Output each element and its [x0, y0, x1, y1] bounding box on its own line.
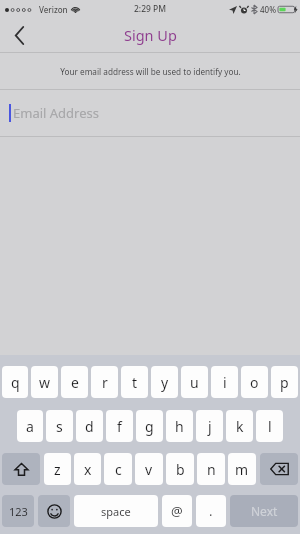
staticText: n: [207, 460, 216, 479]
button[interactable]: n: [197, 453, 225, 485]
button[interactable]: z: [44, 453, 71, 485]
staticText: Verizon: [39, 4, 68, 15]
button[interactable]: y: [151, 366, 178, 398]
staticText: 40%: [260, 4, 276, 15]
staticText: space: [101, 504, 131, 519]
staticText: g: [145, 417, 154, 436]
button[interactable]: e: [61, 366, 88, 398]
staticText: h: [175, 417, 184, 436]
button[interactable]: l: [256, 410, 283, 442]
staticText: 2:29 PM: [134, 3, 167, 15]
staticText: w: [39, 373, 51, 392]
staticText: y: [161, 373, 169, 392]
staticText: b: [176, 460, 185, 479]
staticText: Your email address will be used to ident…: [60, 66, 241, 77]
button[interactable]: v: [135, 453, 163, 485]
staticText: 123: [9, 504, 28, 519]
button[interactable]: .: [196, 495, 226, 527]
button[interactable]: space: [74, 495, 158, 527]
staticText: a: [26, 417, 34, 436]
button[interactable]: u: [181, 366, 208, 398]
button[interactable]: 123: [2, 495, 34, 527]
button[interactable]: i: [211, 366, 238, 398]
staticText: o: [250, 373, 259, 392]
button[interactable]: m: [228, 453, 256, 485]
button[interactable]: d: [76, 410, 103, 442]
staticText: j: [208, 417, 212, 436]
button[interactable]: a: [17, 410, 43, 442]
button[interactable]: t: [121, 366, 148, 398]
staticText: Email Address: [13, 104, 99, 122]
staticText: v: [145, 460, 153, 479]
staticText: @: [171, 502, 183, 520]
button[interactable]: Shift: [2, 453, 40, 485]
staticText: .: [209, 502, 213, 520]
button[interactable]: @: [162, 495, 192, 527]
staticText: f: [117, 417, 122, 436]
button[interactable]: f: [106, 410, 133, 442]
button[interactable]: Back: [0, 18, 40, 52]
button[interactable]: c: [104, 453, 132, 485]
staticText: p: [280, 373, 289, 392]
staticText: Next: [251, 503, 278, 519]
button[interactable]: Next: [230, 495, 298, 527]
staticText: l: [268, 417, 272, 436]
staticText: t: [132, 373, 138, 392]
button[interactable]: h: [166, 410, 193, 442]
button[interactable]: b: [166, 453, 194, 485]
button[interactable]: k: [226, 410, 253, 442]
button[interactable]: w: [31, 366, 58, 398]
button[interactable]: Emoji: [38, 495, 70, 527]
button[interactable]: p: [271, 366, 298, 398]
staticText: z: [54, 460, 61, 479]
button[interactable]: s: [46, 410, 73, 442]
staticText: c: [115, 460, 122, 479]
staticText: r: [102, 373, 108, 392]
button[interactable]: g: [136, 410, 163, 442]
staticText: d: [85, 417, 94, 436]
button[interactable]: x: [74, 453, 101, 485]
button[interactable]: Backspace: [260, 453, 298, 485]
button[interactable]: o: [241, 366, 268, 398]
staticText: e: [71, 373, 79, 392]
staticText: x: [84, 460, 92, 479]
staticText: Sign Up: [124, 25, 177, 45]
button[interactable]: Email Address: [0, 90, 300, 136]
button[interactable]: q: [2, 366, 28, 398]
button[interactable]: j: [196, 410, 223, 442]
staticText: i: [223, 373, 227, 392]
staticText: s: [56, 417, 63, 436]
staticText: q: [11, 373, 20, 392]
staticText: u: [190, 373, 199, 392]
staticText: k: [236, 417, 244, 436]
button[interactable]: r: [91, 366, 118, 398]
staticText: m: [235, 460, 249, 479]
